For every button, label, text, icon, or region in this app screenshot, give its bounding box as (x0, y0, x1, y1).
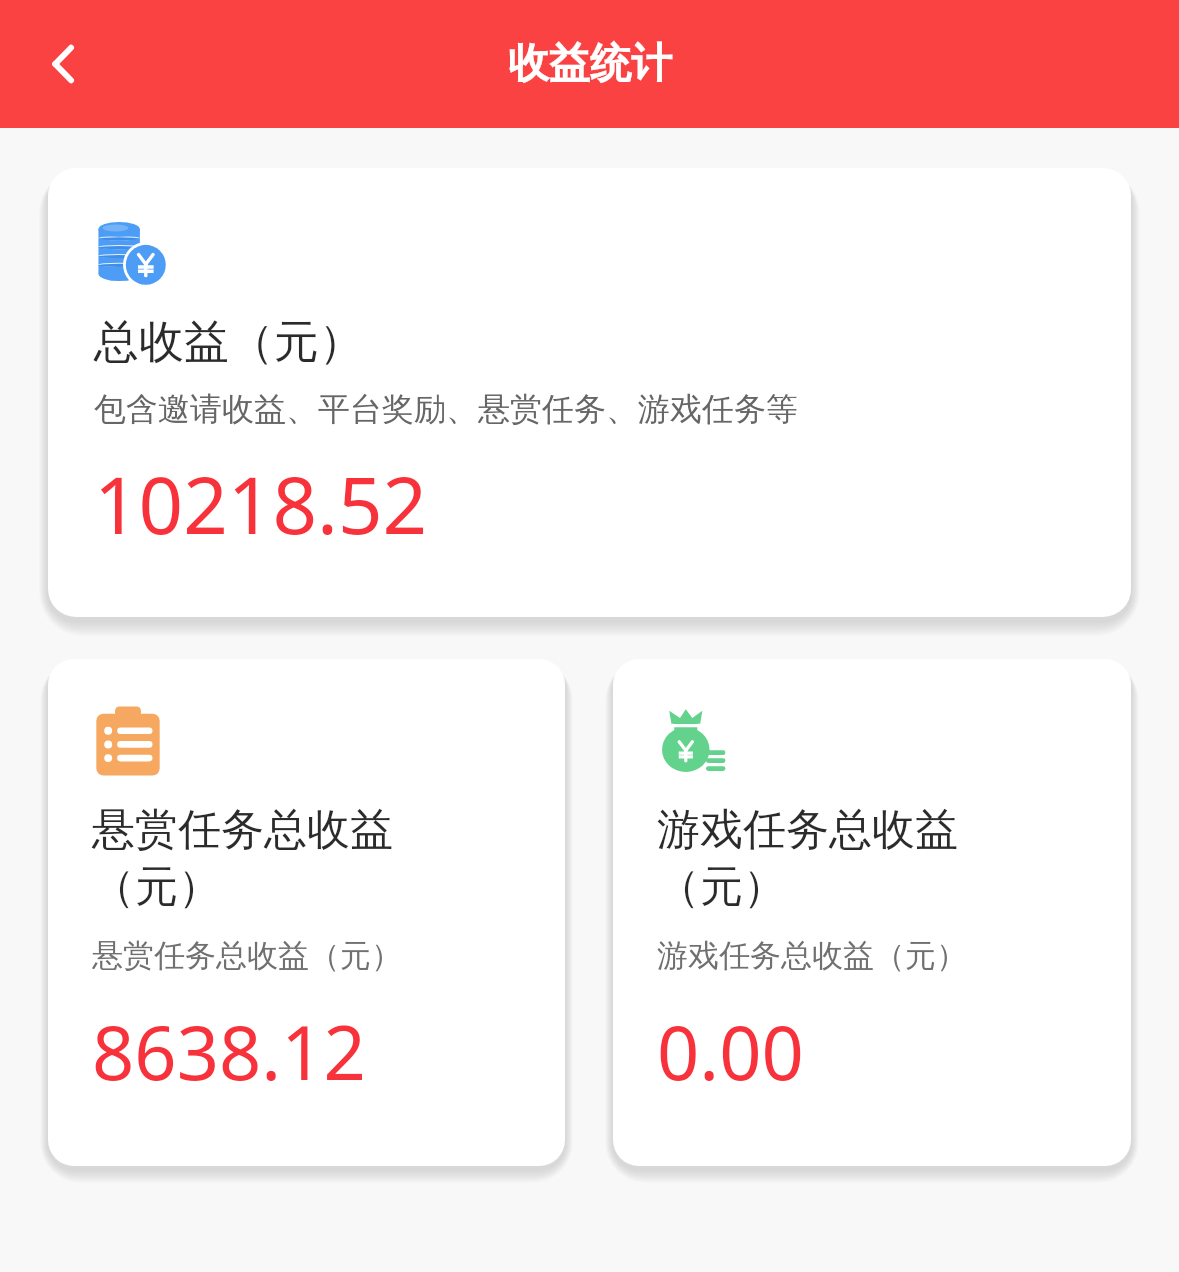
button[interactable]: 总收益（元） (48, 168, 1131, 617)
staticText: 收益统计 (508, 38, 672, 90)
button[interactable]: 悬赏任务总收益 （元） (48, 659, 565, 1166)
staticText: 游戏任务总收益（元） (657, 936, 967, 975)
staticText: 游戏任务总收益 （元） (657, 803, 958, 914)
staticText: 悬赏任务总收益（元） (92, 936, 402, 975)
button[interactable]: 游戏任务总收益 （元） (613, 659, 1131, 1166)
staticText: 8638.12 (92, 1001, 366, 1102)
button[interactable]: Back (18, 18, 110, 110)
staticText: 总收益（元） (94, 314, 364, 371)
staticText: 0.00 (657, 1001, 804, 1102)
staticText: 包含邀请收益、平台奖励、悬赏任务、游戏任务等 (94, 389, 798, 429)
staticText: 悬赏任务总收益 （元） (92, 803, 393, 914)
staticText: 10218.52 (94, 451, 428, 557)
